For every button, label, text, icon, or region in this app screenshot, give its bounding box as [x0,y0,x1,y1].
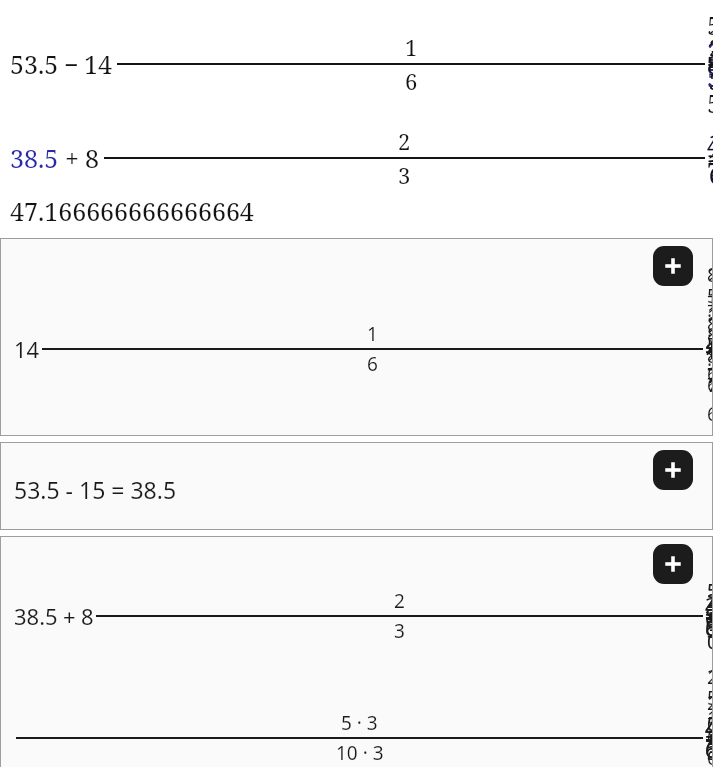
staticText: 14 [84,47,112,81]
staticText: 38.5 [10,141,59,175]
staticText: + [63,601,76,631]
staticText: 38.5 [14,601,58,631]
staticText: 53.5 [10,47,59,81]
staticText: 53.5 - 15 = 38.5 [14,474,177,505]
staticText: 2 [394,588,405,614]
staticText: 2 [398,126,411,156]
button[interactable]: 53.5 - 15 = 38.5 [0,442,713,530]
staticText: 1 [405,32,418,62]
staticText: 8 [85,141,99,175]
staticText: 5 · 3 [341,710,378,736]
staticText: 6 [405,66,418,96]
staticText: 47.166666666666664 [10,194,254,228]
staticText: 8 [81,601,94,631]
staticText: 3 [394,618,405,644]
button[interactable]: 14 [0,238,713,436]
staticText: 6 [367,351,378,377]
button[interactable]: Expand step [653,450,693,490]
button[interactable]: Expand step [653,246,693,286]
button[interactable]: 38.5 [0,536,713,767]
button[interactable]: Expand step [653,544,693,584]
staticText: + [65,141,79,175]
staticText: 3 [398,160,411,190]
staticText: − [64,47,79,81]
staticText: 1 [367,321,378,347]
staticText: 14 [14,334,40,364]
staticText: 10 · 3 [336,740,384,766]
